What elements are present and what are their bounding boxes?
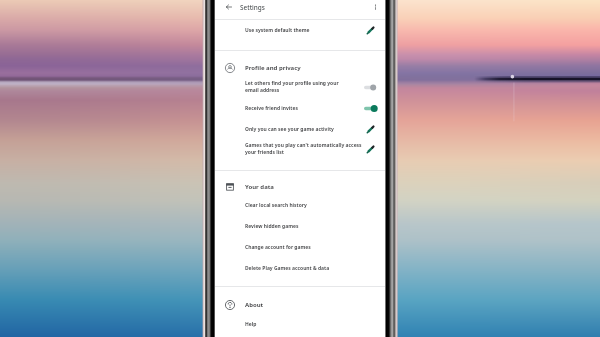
staticText: Profile and privacy: [245, 64, 301, 72]
button[interactable]: Delete Play Games account & data: [215, 258, 385, 278]
button[interactable]: Use system default theme: [215, 18, 385, 42]
button[interactable]: Help: [215, 314, 385, 334]
staticText: Games that you play can't automatically …: [245, 142, 362, 156]
staticText: Change account for games: [245, 244, 311, 251]
staticText: About: [245, 301, 264, 309]
staticText: Receive friend invites: [245, 105, 298, 112]
staticText: Clear local search history: [245, 202, 307, 209]
staticText: Let others find your profile using your …: [245, 80, 339, 94]
staticText: Help: [245, 321, 257, 328]
staticText: Use system default theme: [245, 27, 310, 34]
button[interactable]: More options: [368, 0, 382, 14]
button[interactable]: Only you can see your game activity: [215, 119, 385, 139]
button[interactable]: Let others find your profile using your …: [215, 76, 385, 98]
staticText: Settings: [240, 3, 265, 12]
button[interactable]: Profile and privacy: [215, 58, 385, 77]
staticText: Delete Play Games account & data: [245, 265, 330, 272]
staticText: Only you can see your game activity: [245, 126, 334, 133]
button[interactable]: Back: [220, 0, 237, 14]
button[interactable]: Games that you play can't automatically …: [215, 138, 385, 160]
button[interactable]: Clear local search history: [215, 195, 385, 215]
button[interactable]: Change account for games: [215, 237, 385, 257]
button[interactable]: Your data: [215, 177, 385, 196]
button[interactable]: About: [215, 295, 385, 314]
staticText: Your data: [245, 183, 274, 191]
button[interactable]: Receive friend invites: [215, 98, 385, 118]
button[interactable]: Review hidden games: [215, 216, 385, 236]
staticText: Review hidden games: [245, 223, 299, 230]
